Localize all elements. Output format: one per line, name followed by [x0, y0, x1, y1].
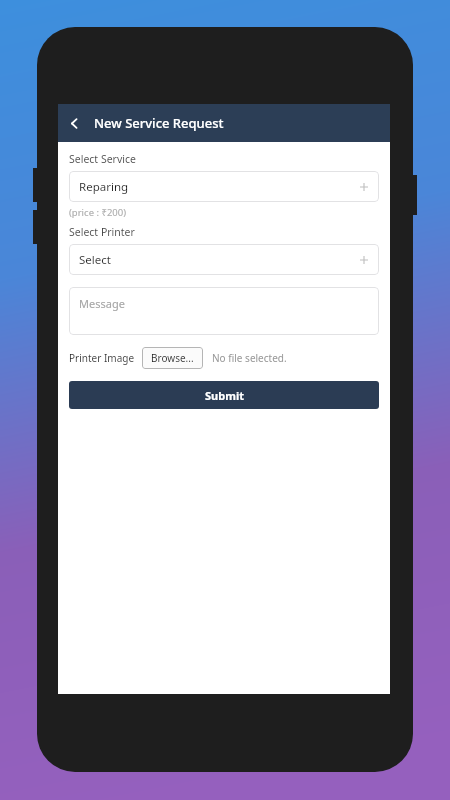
button[interactable]: Browse...	[142, 347, 203, 369]
staticText: Message	[79, 296, 125, 311]
staticText: Select	[79, 252, 111, 268]
staticText: Printer Image	[69, 351, 135, 365]
staticText: Select Printer	[69, 225, 135, 239]
staticText: Submit	[205, 388, 244, 403]
staticText: Select Service	[69, 152, 136, 166]
button[interactable]: Message	[69, 287, 379, 335]
staticText: New Service Request	[94, 114, 224, 132]
button[interactable]: Submit	[69, 381, 379, 409]
button[interactable]: Back	[58, 104, 90, 142]
staticText: No file selected.	[212, 351, 287, 365]
staticText: (price : ₹200)	[69, 206, 127, 219]
staticText: Reparing	[79, 179, 129, 195]
staticText: Browse...	[151, 351, 194, 365]
button[interactable]: Select	[69, 244, 379, 275]
button[interactable]: Reparing	[69, 171, 379, 202]
